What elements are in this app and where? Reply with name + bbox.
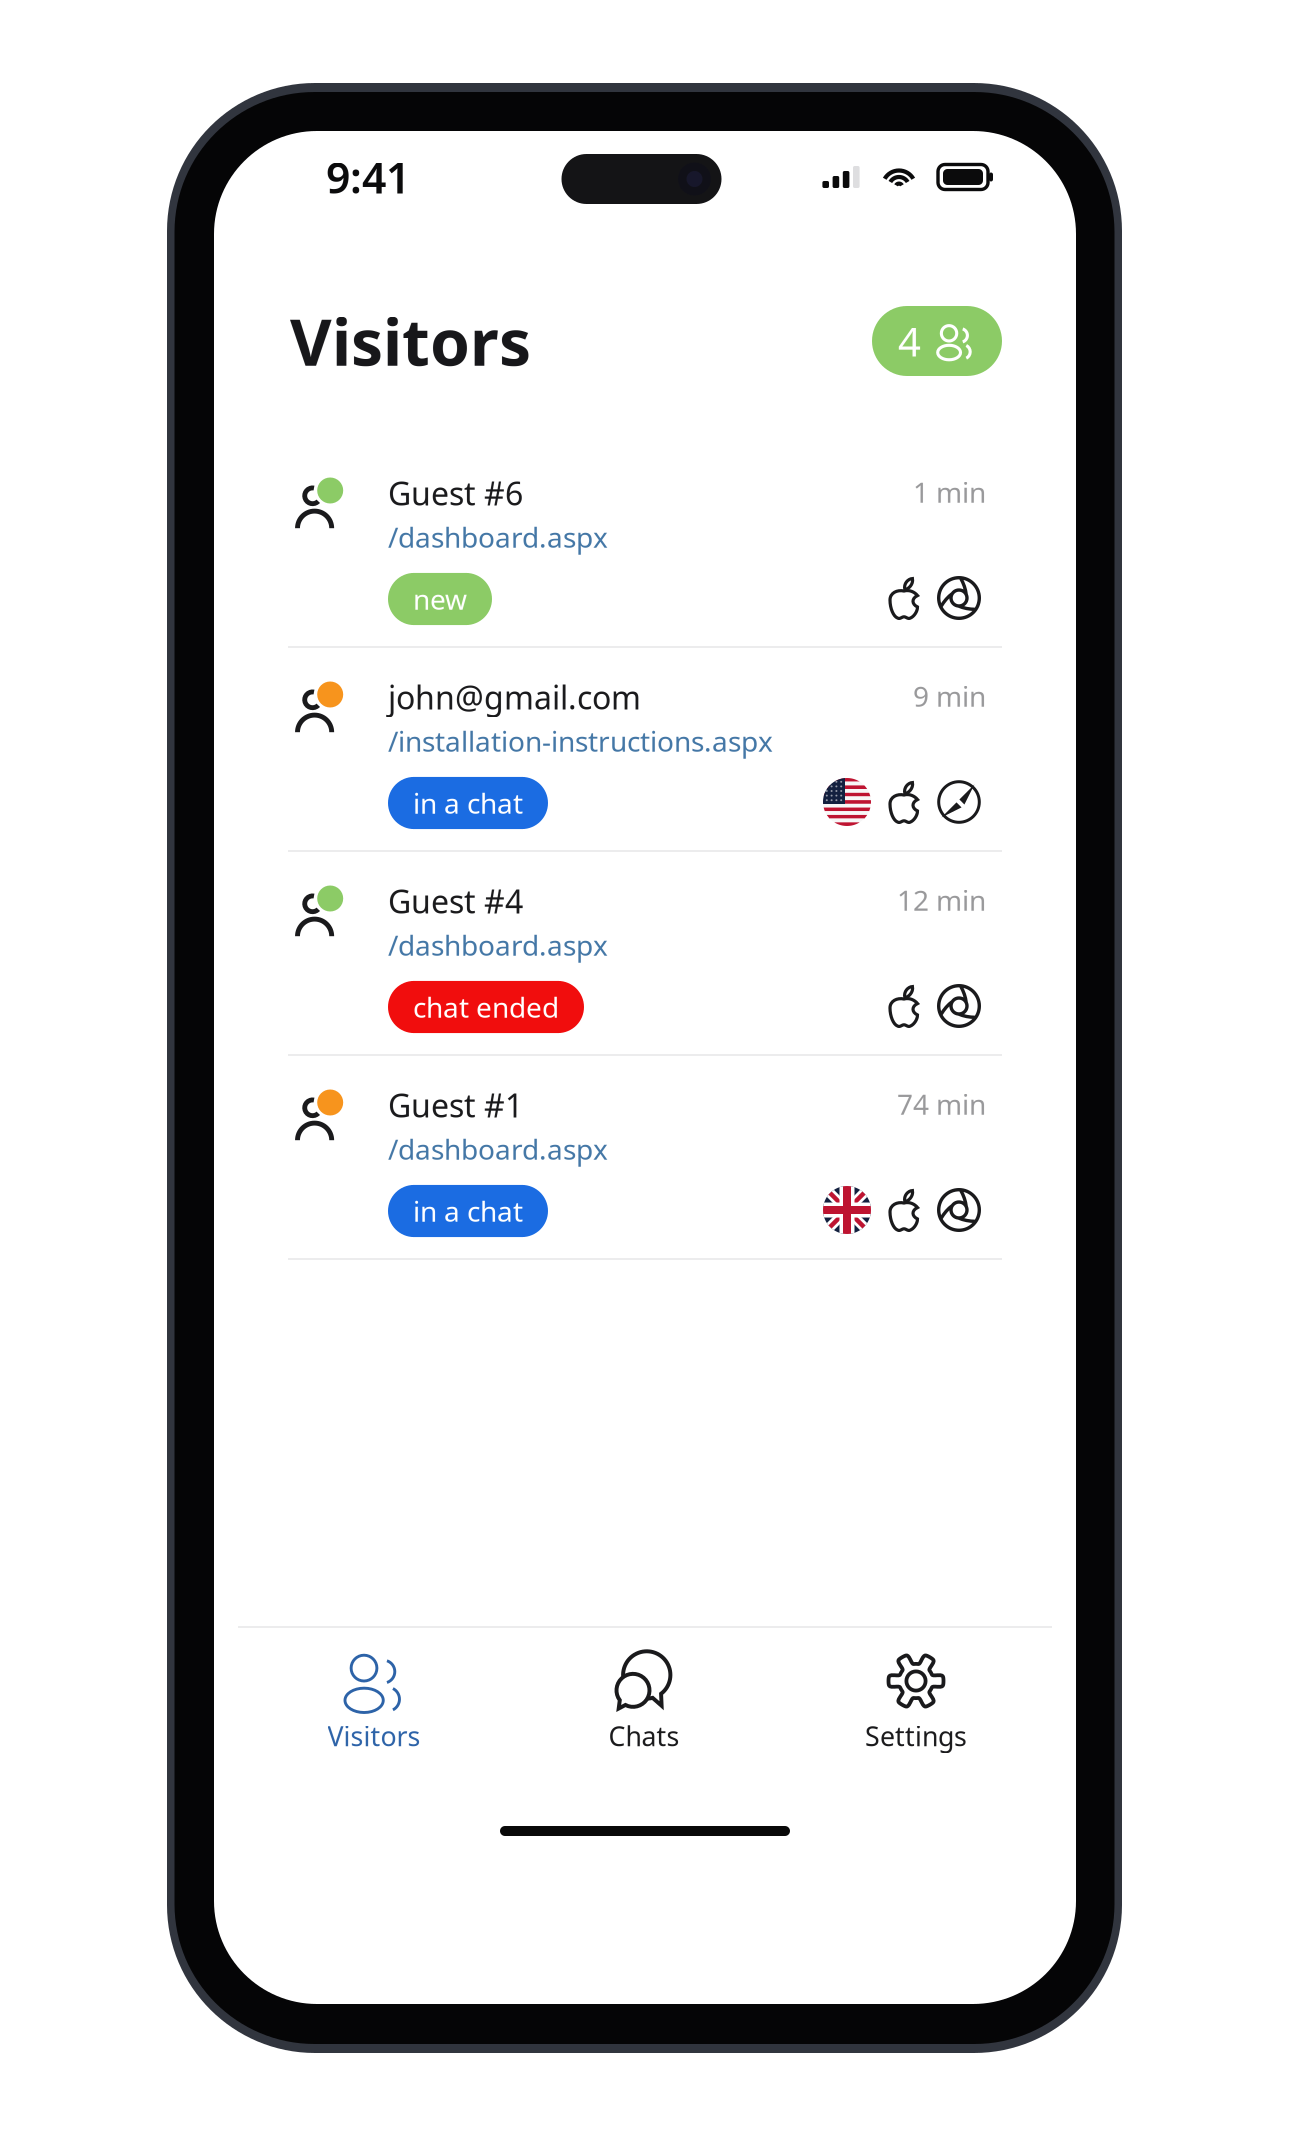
staticText: new (413, 580, 467, 618)
staticText: 1 min (913, 473, 986, 511)
button[interactable]: Guest #4 (214, 852, 1076, 1056)
button[interactable]: Guest #1 (214, 1056, 1076, 1260)
staticText: 12 min (897, 881, 986, 919)
staticText: Visitors (327, 1718, 420, 1754)
button[interactable]: Guest #6 (214, 444, 1076, 648)
staticText: Guest #4 (388, 880, 523, 922)
staticText: Guest #1 (388, 1084, 523, 1126)
staticText: /dashboard.aspx (388, 1130, 608, 1168)
staticText: john@gmail.com (388, 676, 641, 718)
staticText: 9 min (913, 677, 986, 715)
staticText: chat ended (413, 988, 559, 1026)
button[interactable]: Settings (816, 1647, 1016, 1777)
staticText: /installation-instructions.aspx (388, 722, 773, 760)
button[interactable]: 4 visitors online (872, 306, 1002, 376)
button[interactable]: Visitors (274, 1647, 474, 1777)
button[interactable]: Chats (544, 1647, 744, 1777)
staticText: Visitors (290, 298, 531, 383)
staticText: /dashboard.aspx (388, 926, 608, 964)
staticText: Guest #6 (388, 472, 523, 514)
staticText: Chats (608, 1718, 679, 1754)
staticText: in a chat (413, 784, 523, 822)
staticText: 4 (898, 314, 921, 367)
button[interactable]: john@gmail.com (214, 648, 1076, 852)
staticText: Settings (865, 1718, 967, 1754)
staticText: 74 min (897, 1085, 986, 1123)
staticText: in a chat (413, 1192, 523, 1230)
staticText: /dashboard.aspx (388, 518, 608, 556)
staticText: 9:41 (326, 149, 410, 205)
